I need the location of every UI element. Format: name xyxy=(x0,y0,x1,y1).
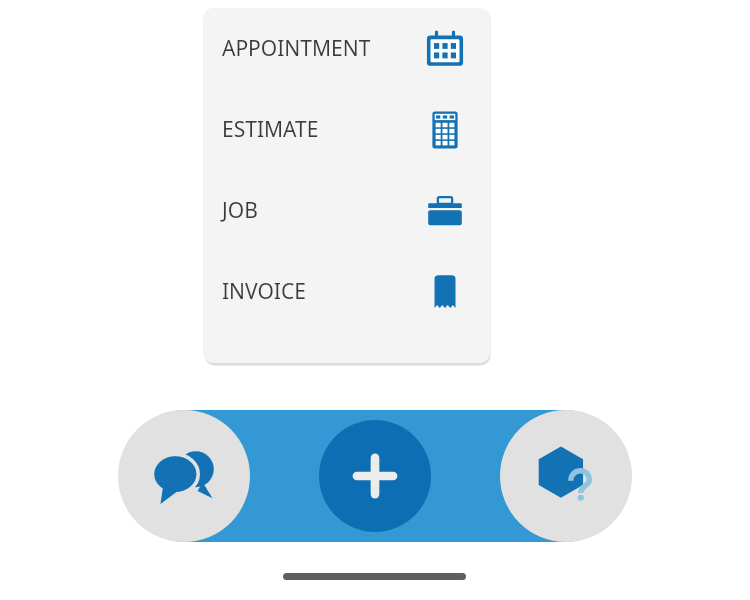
button[interactable]: Add xyxy=(319,420,431,532)
staticText: ESTIMATE xyxy=(222,115,319,144)
button[interactable]: INVOICE xyxy=(203,251,490,332)
button[interactable]: APPOINTMENT xyxy=(203,8,490,89)
staticText: APPOINTMENT xyxy=(222,34,371,63)
staticText: JOB xyxy=(222,196,258,225)
button[interactable]: Messages xyxy=(118,410,250,542)
staticText: INVOICE xyxy=(222,277,306,306)
button[interactable]: Help xyxy=(500,410,632,542)
button[interactable]: ESTIMATE xyxy=(203,89,490,170)
button[interactable]: JOB xyxy=(203,170,490,251)
